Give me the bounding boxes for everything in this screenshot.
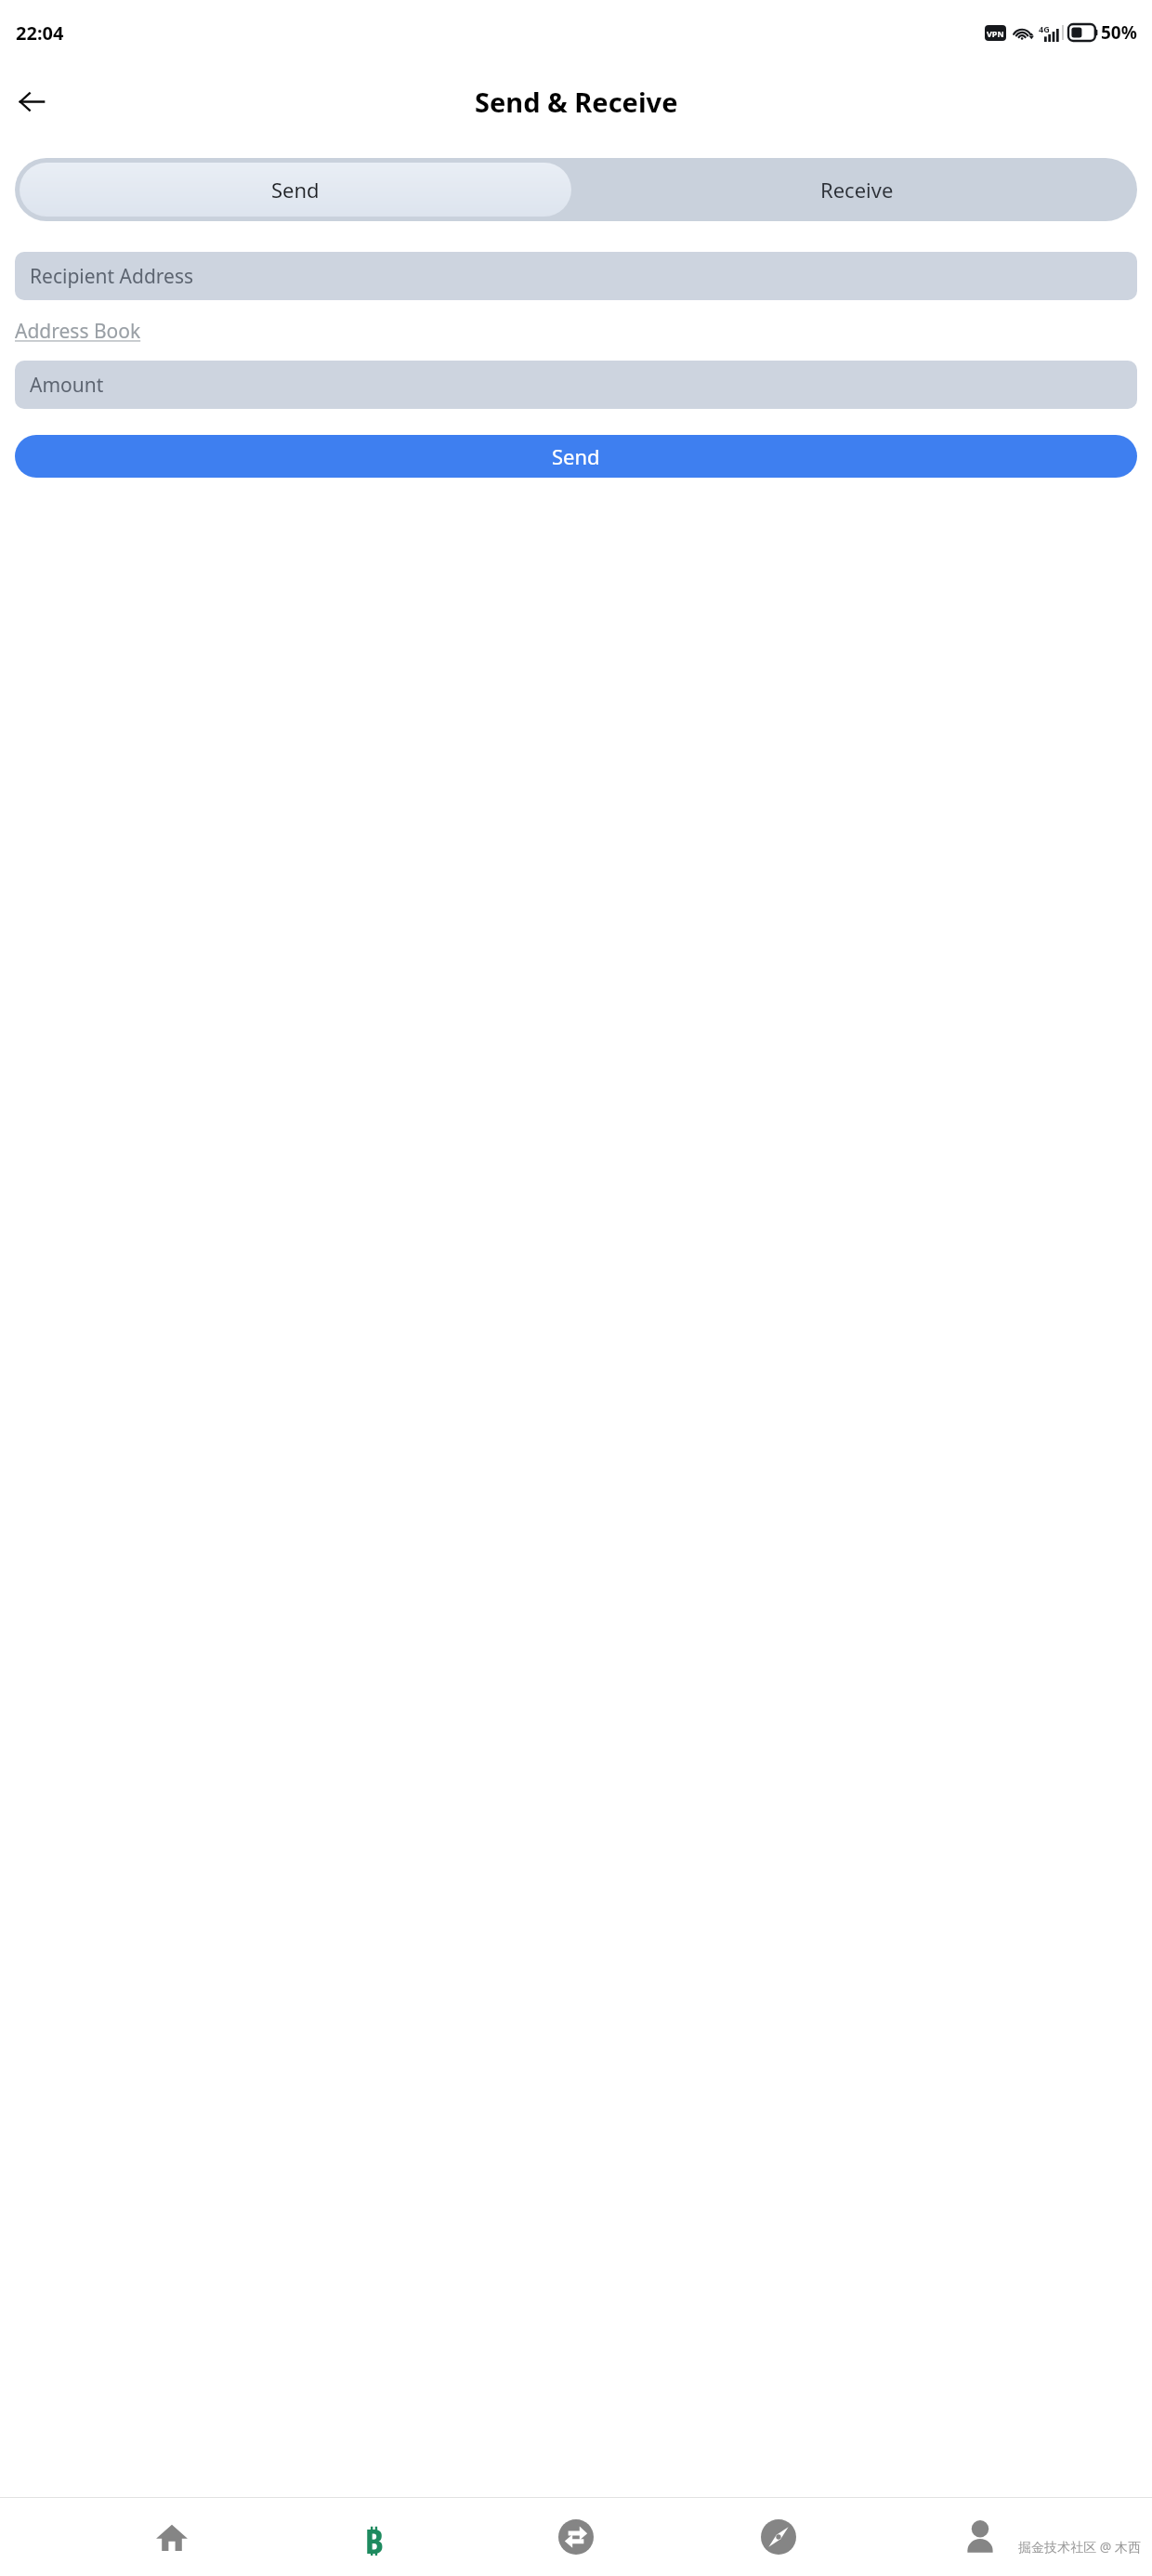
button[interactable]: Explore [748,2508,809,2566]
staticText: 22:04 [16,20,64,46]
staticText: Send [271,176,320,204]
staticText: Send [552,442,600,470]
button[interactable]: Bitcoin [343,2508,404,2566]
staticText: 4G [1039,23,1050,34]
button[interactable]: Receive [576,158,1137,221]
staticText: Recipient Address [30,263,194,290]
button[interactable]: Send [15,435,1137,478]
staticText: ₿ [364,2518,384,2556]
button[interactable]: Recipient Address [15,252,1137,300]
button[interactable]: Back [7,77,56,125]
button[interactable]: Amount [15,361,1137,409]
staticText: Receive [820,176,894,204]
button[interactable]: Send [20,163,571,217]
button[interactable]: Address Book [15,318,141,345]
staticText: 50% [1101,20,1137,45]
button[interactable]: Home [141,2508,203,2566]
button[interactable]: Swap [545,2508,607,2566]
staticText: Amount [30,372,104,399]
button[interactable]: Profile [949,2508,1011,2566]
staticText: VPN [987,28,1004,39]
staticText: 掘金技术社区 @ 木西 [1018,2538,1141,2556]
staticText: Address Book [15,318,141,345]
staticText: Send & Receive [475,84,678,120]
